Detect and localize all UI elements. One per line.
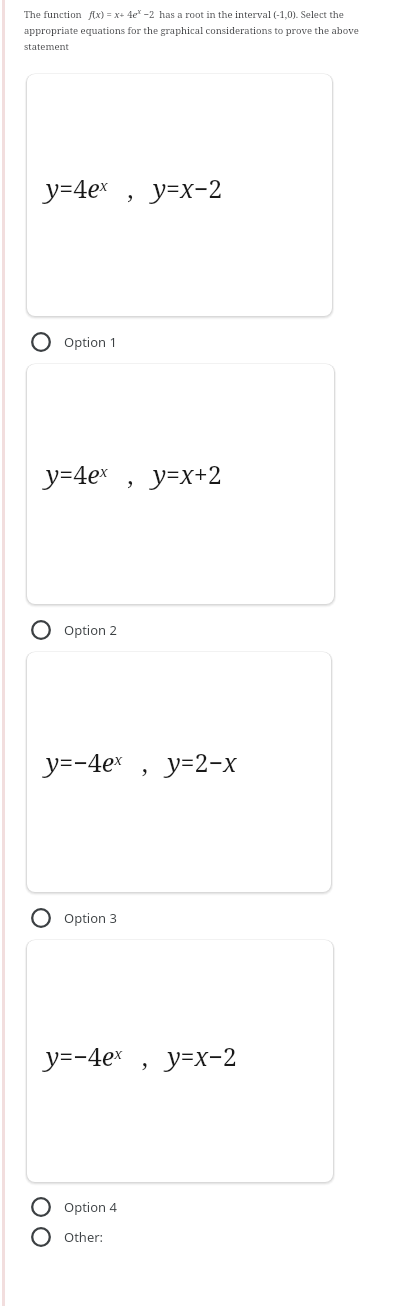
staticText: Option 4: [64, 1198, 117, 1216]
button[interactable]: Option 2: [0, 604, 409, 640]
staticText: y=4ex , y=x−2: [46, 171, 223, 205]
button[interactable]: Option 3: [0, 892, 409, 928]
staticText: Option 1: [64, 333, 117, 351]
button[interactable]: y=4ex , y=x+2: [27, 364, 334, 604]
staticText: Other:: [64, 1228, 104, 1246]
staticText: y=4ex , y=x+2: [46, 457, 222, 491]
button[interactable]: Option 1: [0, 316, 409, 352]
staticText: The function f(x) = x+ 4ex −2 has a root…: [24, 7, 393, 52]
button[interactable]: y=−4ex , y=x−2: [27, 940, 333, 1182]
button[interactable]: y=4ex , y=x−2: [27, 74, 332, 316]
button[interactable]: Option 4: [0, 1182, 409, 1217]
staticText: Option 3: [64, 909, 117, 927]
button[interactable]: y=−4ex , y=2−x: [27, 652, 331, 892]
staticText: y=−4ex , y=2−x: [46, 745, 237, 779]
button[interactable]: Other:: [0, 1217, 409, 1255]
staticText: Option 2: [64, 621, 117, 639]
staticText: y=−4ex , y=x−2: [46, 1039, 237, 1073]
